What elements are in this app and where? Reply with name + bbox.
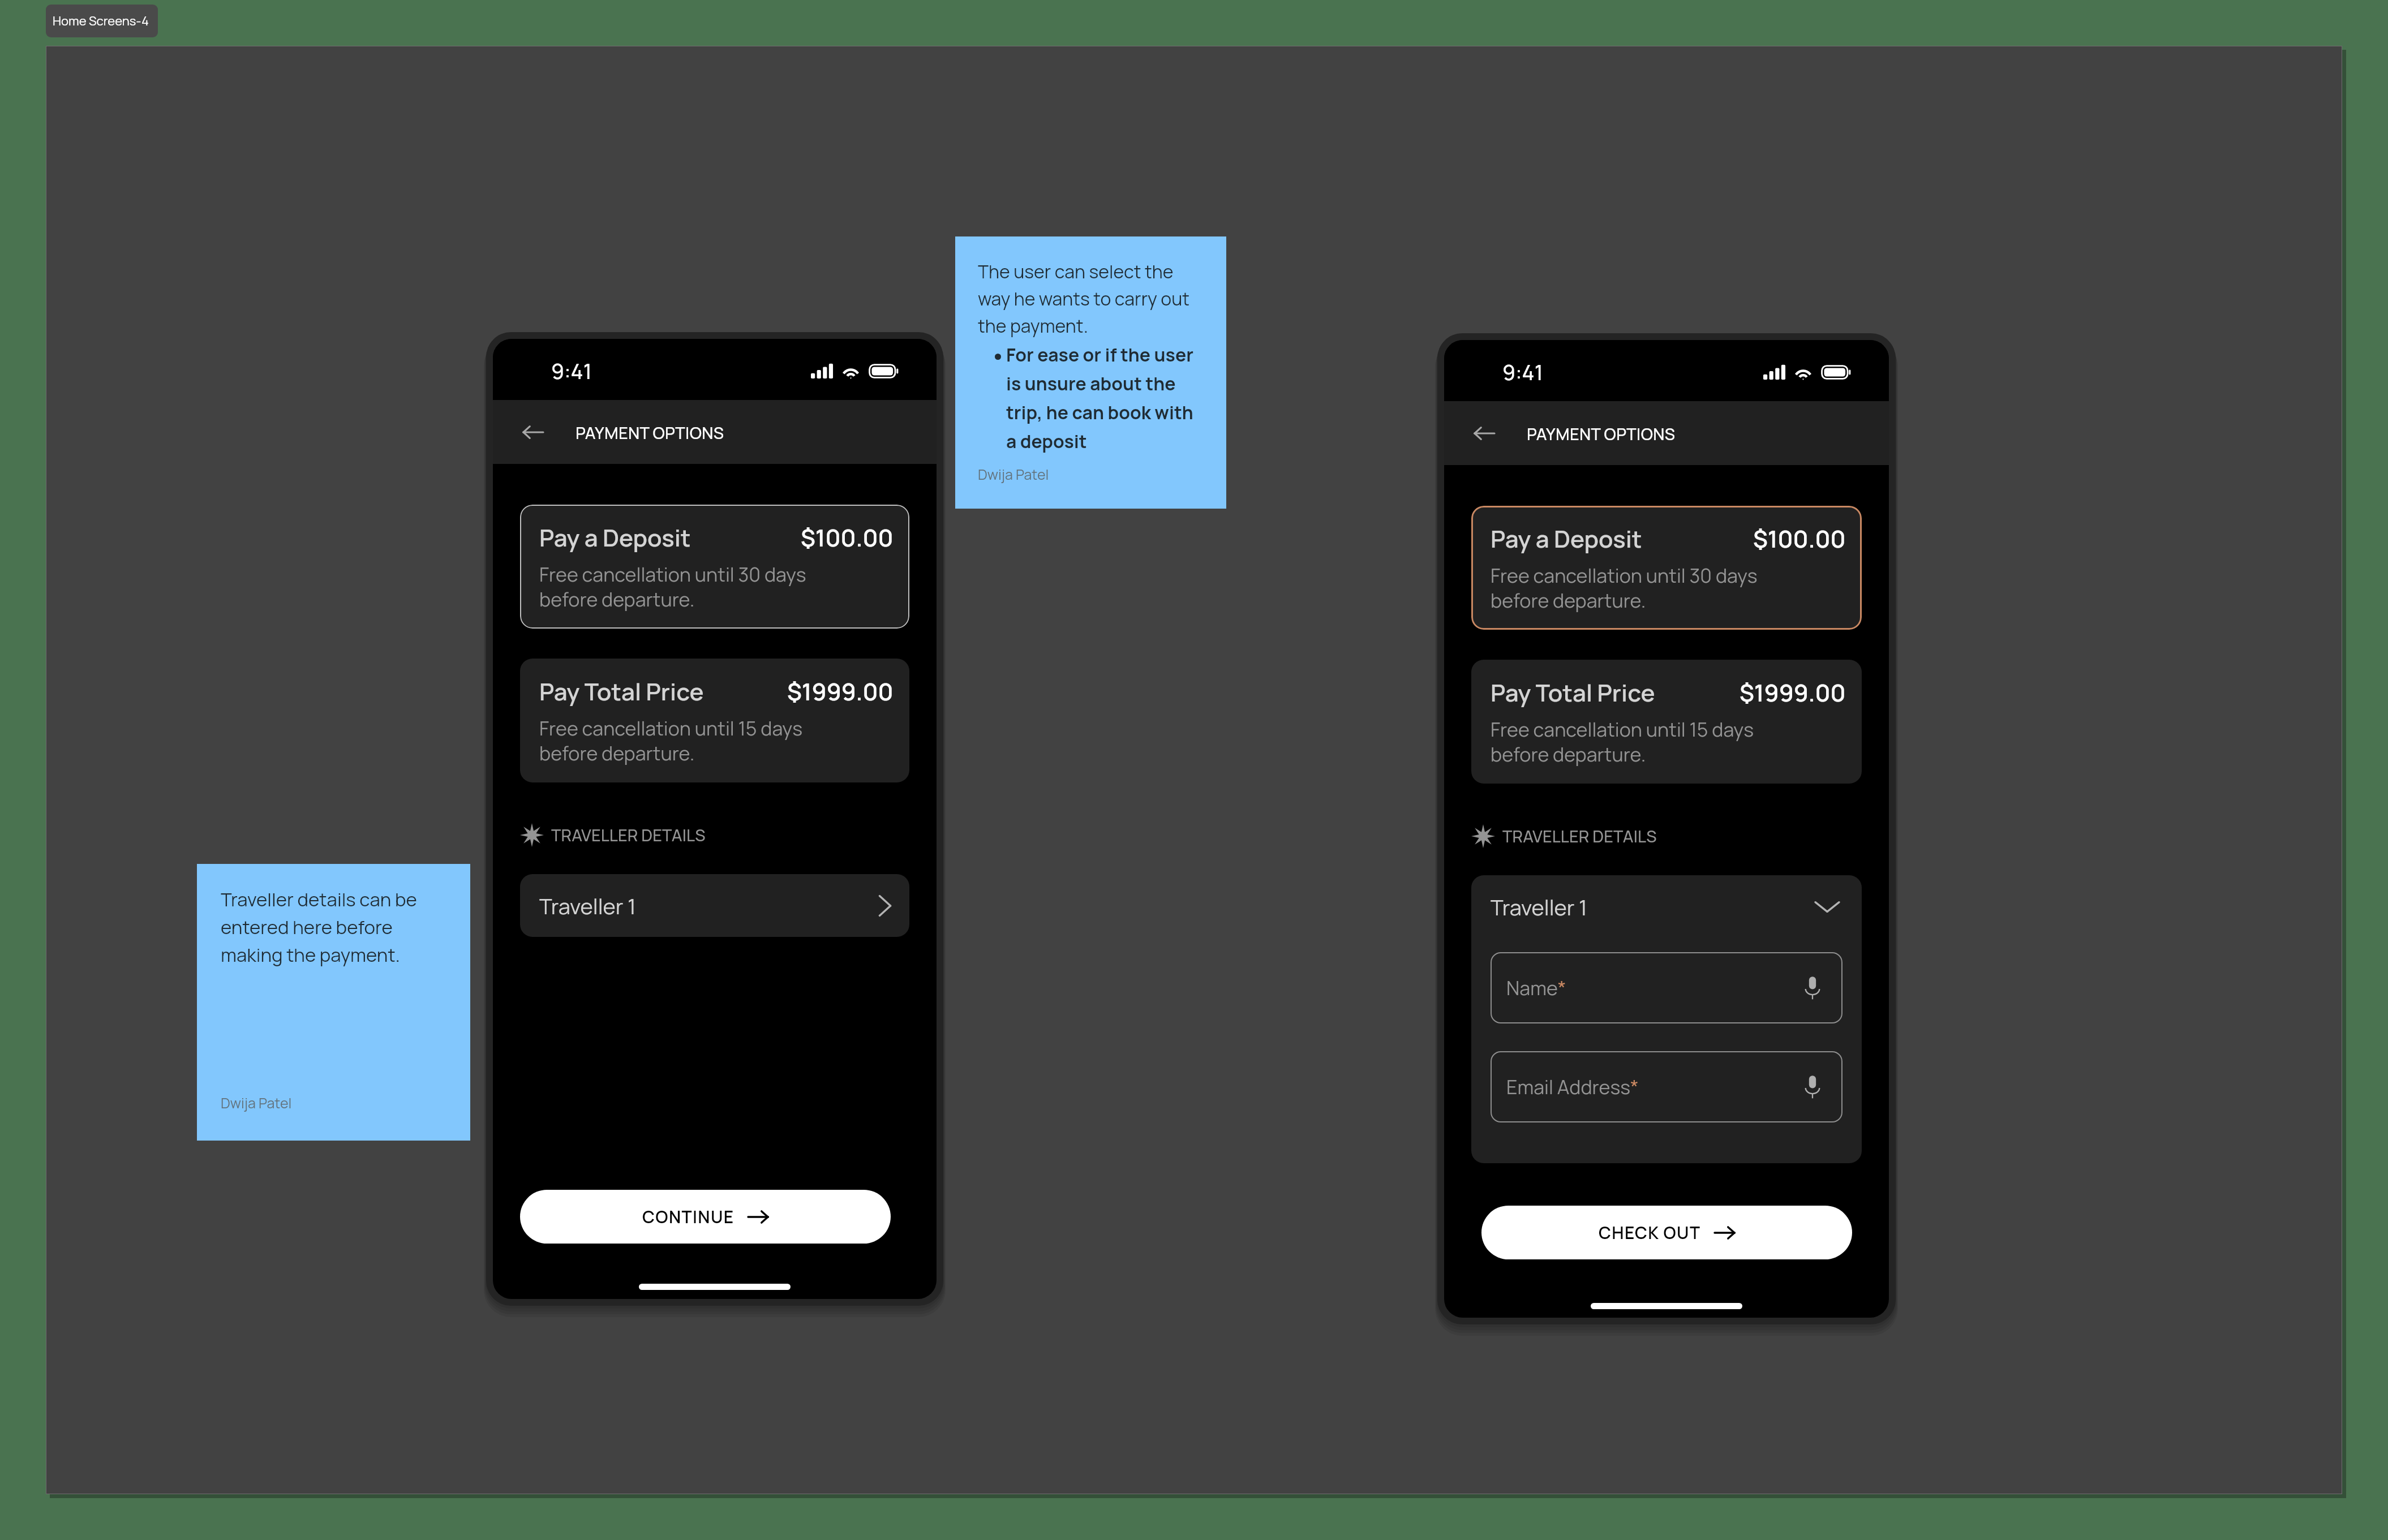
staticText: PAYMENT OPTIONS bbox=[575, 421, 724, 444]
staticText: $1999.00 bbox=[787, 675, 894, 707]
button[interactable]: Traveller 1 bbox=[1471, 875, 1862, 1163]
staticText: The user can select the way he wants to … bbox=[978, 259, 1189, 338]
staticText: Free cancellation until 30 days before d… bbox=[1491, 562, 1758, 614]
staticText: TRAVELLER DETAILS bbox=[1502, 825, 1657, 848]
button[interactable]: Email Address* bbox=[1491, 1051, 1842, 1122]
staticText: Home Screens-4 bbox=[53, 12, 149, 29]
button[interactable]: Back bbox=[512, 411, 554, 453]
staticText: $1999.00 bbox=[1740, 676, 1846, 708]
staticText: Free cancellation until 15 days before d… bbox=[1491, 716, 1754, 768]
staticText: PAYMENT OPTIONS bbox=[1527, 423, 1676, 445]
staticText: Dwija Patel bbox=[221, 1093, 292, 1112]
button[interactable]: Name* bbox=[1491, 952, 1842, 1023]
staticText: CONTINUE bbox=[642, 1205, 735, 1228]
staticText: Dwija Patel bbox=[978, 464, 1049, 484]
button[interactable]: Pay a Deposit bbox=[520, 505, 909, 629]
staticText: CHECK OUT bbox=[1599, 1221, 1701, 1244]
staticText: TRAVELLER DETAILS bbox=[551, 824, 706, 846]
button[interactable]: Traveller 1 bbox=[520, 874, 909, 937]
button[interactable]: Pay Total Price bbox=[520, 659, 909, 782]
button[interactable]: Pay Total Price bbox=[1471, 660, 1862, 784]
button[interactable]: Home Screens-4 bbox=[46, 5, 158, 37]
button[interactable]: Back bbox=[1463, 412, 1505, 454]
staticText: Name* bbox=[1506, 975, 1566, 1001]
staticText: 9:41 bbox=[1502, 358, 1543, 387]
staticText: Pay a Deposit bbox=[1491, 522, 1642, 554]
staticText: Email Address* bbox=[1506, 1074, 1639, 1100]
staticText: Free cancellation until 30 days before d… bbox=[539, 561, 806, 613]
staticText: For ease or if the user is unsure about … bbox=[1006, 342, 1193, 453]
button[interactable]: Voice input bbox=[1799, 975, 1826, 1001]
staticText: Traveller 1 bbox=[539, 891, 636, 920]
button[interactable]: CHECK OUT bbox=[1481, 1206, 1852, 1259]
button[interactable]: Pay a Deposit bbox=[1471, 506, 1862, 630]
button[interactable]: Voice input bbox=[1799, 1074, 1826, 1100]
staticText: $100.00 bbox=[801, 521, 894, 553]
staticText: $100.00 bbox=[1753, 522, 1846, 554]
staticText: Free cancellation until 15 days before d… bbox=[539, 715, 803, 767]
staticText: Traveller details can be entered here be… bbox=[221, 887, 417, 967]
staticText: Pay Total Price bbox=[539, 675, 704, 707]
staticText: Traveller 1 bbox=[1491, 892, 1587, 922]
staticText: Pay a Deposit bbox=[539, 521, 691, 553]
staticText: 9:41 bbox=[551, 357, 592, 386]
button[interactable]: CONTINUE bbox=[520, 1190, 891, 1244]
staticText: Pay Total Price bbox=[1491, 676, 1655, 708]
